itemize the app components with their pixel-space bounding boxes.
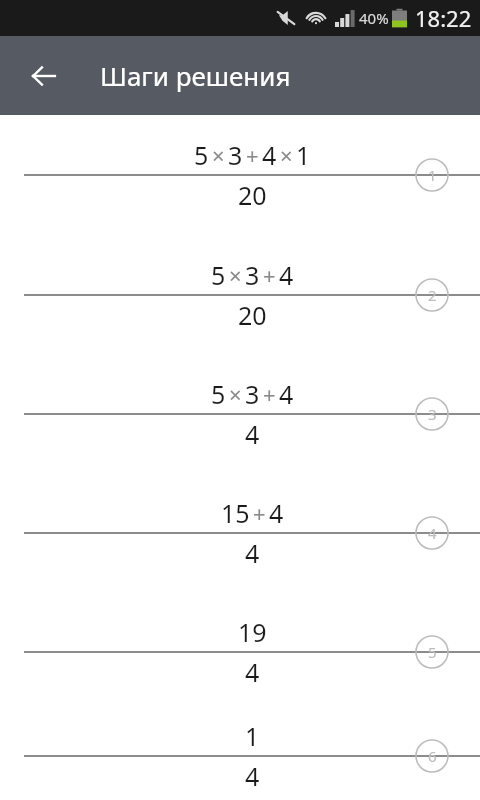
staticText: 4	[262, 138, 277, 172]
staticText: ×	[280, 140, 293, 170]
staticText: 4	[279, 258, 294, 292]
button[interactable]: 1	[0, 711, 480, 800]
staticText: 1	[245, 719, 260, 753]
staticText: 19	[238, 615, 267, 649]
staticText: 15	[221, 496, 250, 530]
staticText: 4	[245, 417, 260, 451]
staticText: 4	[279, 377, 294, 411]
staticText: +	[263, 260, 276, 290]
staticText: 4	[245, 536, 260, 570]
staticText: +	[263, 379, 276, 409]
button[interactable]: 5	[0, 115, 480, 235]
staticText: 20	[238, 178, 267, 212]
staticText: 3	[428, 404, 437, 424]
button[interactable]: 5	[0, 235, 480, 354]
staticText: 20	[238, 298, 267, 332]
staticText: ×	[212, 140, 225, 170]
staticText: 5	[211, 258, 226, 292]
staticText: 3	[245, 377, 260, 411]
staticText: 5	[211, 377, 226, 411]
staticText: 6	[428, 746, 437, 766]
staticText: 5	[194, 138, 209, 172]
staticText: 5	[428, 642, 437, 662]
staticText: ×	[229, 379, 242, 409]
staticText: 4	[269, 496, 284, 530]
staticText: +	[253, 498, 266, 528]
staticText: 1	[296, 138, 311, 172]
staticText: 40%	[359, 8, 389, 28]
staticText: 4	[245, 759, 260, 793]
staticText: 2	[428, 285, 437, 305]
staticText: ×	[229, 260, 242, 290]
staticText: 3	[245, 258, 260, 292]
button[interactable]: 19	[0, 592, 480, 711]
staticText: +	[246, 140, 259, 170]
staticText: 4	[245, 655, 260, 689]
staticText: 4	[428, 523, 437, 543]
button[interactable]: Back	[20, 52, 68, 100]
button[interactable]: 5	[0, 354, 480, 473]
staticText: 3	[228, 138, 243, 172]
button[interactable]: 15	[0, 473, 480, 592]
staticText: 1	[428, 165, 437, 185]
staticText: Шаги решения	[100, 58, 291, 93]
staticText: 18:22	[415, 3, 472, 33]
